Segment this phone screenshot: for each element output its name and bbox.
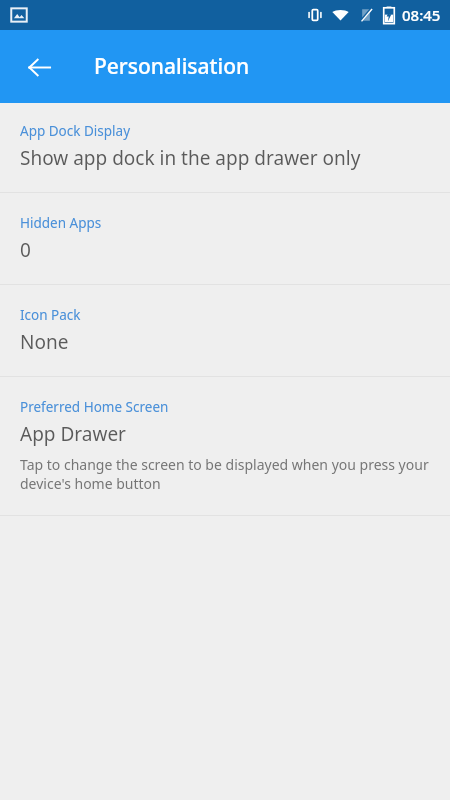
staticText: Personalisation bbox=[94, 52, 250, 81]
staticText: App Drawer bbox=[20, 421, 126, 447]
button[interactable]: Icon Pack bbox=[0, 285, 450, 376]
button[interactable]: Hidden Apps bbox=[0, 193, 450, 284]
staticText: 0 bbox=[20, 237, 31, 263]
button[interactable]: Back bbox=[20, 48, 58, 86]
staticText: 08:45 bbox=[402, 5, 441, 25]
staticText: Tap to change the screen to be displayed… bbox=[20, 455, 430, 493]
button[interactable]: App Dock Display bbox=[0, 103, 450, 192]
button[interactable]: Preferred Home Screen bbox=[0, 377, 450, 515]
staticText: None bbox=[20, 329, 69, 355]
staticText: Hidden Apps bbox=[20, 214, 102, 232]
staticText: Icon Pack bbox=[20, 306, 81, 324]
staticText: Show app dock in the app drawer only bbox=[20, 145, 361, 171]
staticText: Preferred Home Screen bbox=[20, 398, 169, 416]
staticText: App Dock Display bbox=[20, 122, 131, 140]
